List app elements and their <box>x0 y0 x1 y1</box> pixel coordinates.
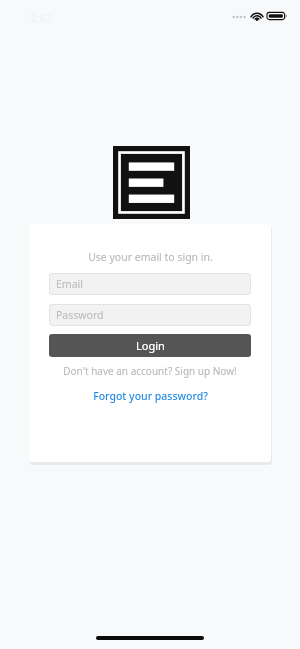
staticText: Forgot your password? <box>93 389 208 403</box>
button[interactable]: Password <box>49 304 251 326</box>
button[interactable]: Login <box>49 334 251 357</box>
button[interactable]: Forgot your password? <box>49 389 251 403</box>
staticText: Email <box>56 277 83 291</box>
staticText: 2:52 <box>30 10 52 25</box>
button[interactable]: Email <box>49 273 251 295</box>
button[interactable]: Don't have an account? Sign up Now! <box>49 364 251 378</box>
staticText: Password <box>56 308 104 322</box>
staticText: Don't have an account? Sign up Now! <box>63 364 237 378</box>
staticText: Login <box>136 338 165 353</box>
staticText: Use your email to sign in. <box>88 250 213 264</box>
other: Home indicator <box>96 636 204 640</box>
